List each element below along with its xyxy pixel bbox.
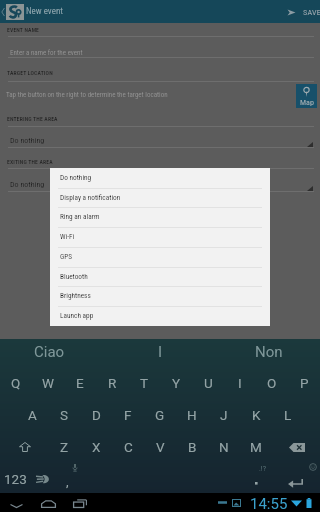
staticText: Do nothing [10,180,45,189]
staticText: E [76,375,84,391]
staticText: G [155,407,165,423]
button[interactable]: Map [296,84,317,108]
staticText: H [187,407,197,423]
button[interactable]: Recent apps [67,493,93,512]
button[interactable]: 123 [0,461,30,493]
button[interactable]: O [256,367,288,399]
button[interactable]: H [176,399,208,431]
staticText: Q [11,375,21,391]
button[interactable]: P [288,367,320,399]
staticText: Tap the button on the right to determine… [6,91,168,99]
staticText: W [42,375,54,391]
button[interactable]: Non [218,339,320,365]
button[interactable]: D [80,399,112,431]
button[interactable] [50,247,270,267]
button[interactable]: S [48,399,80,431]
button[interactable] [50,188,270,208]
button[interactable]: G [144,399,176,431]
staticText: B [188,439,197,455]
button[interactable]: Y [160,367,192,399]
button[interactable]: A [16,399,48,431]
button[interactable]: Q [0,367,32,399]
button[interactable]: B [176,431,208,463]
button[interactable]: Navigate up [0,0,25,23]
staticText: Bluetooth [60,272,88,281]
staticText: Launch app [60,311,94,320]
button[interactable]: E [64,367,96,399]
button[interactable]: Change keyboard [30,461,56,493]
staticText: N [219,439,229,455]
button[interactable]: , [56,461,78,493]
button[interactable]: N [208,431,240,463]
button[interactable]: Enter [282,461,320,493]
button[interactable] [50,267,270,287]
button[interactable] [50,227,270,247]
button[interactable]: F [112,399,144,431]
button[interactable]: U [192,367,224,399]
staticText: X [92,439,101,455]
staticText: K [252,407,261,423]
button[interactable]: V [144,431,176,463]
button[interactable]: R [96,367,128,399]
staticText: J [220,407,228,423]
staticText: New event [26,6,63,17]
staticText: T [140,375,149,391]
button[interactable]: I [224,367,256,399]
button[interactable]: C [112,431,144,463]
button[interactable] [50,207,270,227]
staticText: EXITING THE AREA [7,159,53,166]
staticText: U [204,375,213,391]
button[interactable]: L [272,399,304,431]
button[interactable] [50,306,270,326]
button[interactable]: Save [283,0,320,23]
staticText: C [124,439,133,455]
button[interactable]: W [32,367,64,399]
staticText: 14:55 [250,495,288,512]
staticText: 123 [4,471,27,487]
staticText: L [284,407,292,423]
staticText: Enter a name for the event [10,49,83,57]
staticText: ENTERING THE AREA [7,116,58,123]
staticText: EVENT NAME [7,27,40,34]
staticText: S [60,407,69,423]
staticText: Y [172,375,181,391]
button[interactable]: X [80,431,112,463]
button[interactable]: Ciao [0,339,98,365]
staticText: R [108,375,117,391]
staticText: TARGET LOCATION [7,70,53,77]
staticText: V [156,439,165,455]
button[interactable]: Back [3,493,29,512]
staticText: Ring an alarm [60,212,100,221]
button[interactable]: .!? [244,461,282,493]
button[interactable]: M [240,431,272,463]
button[interactable] [50,168,270,188]
staticText: GPS [60,252,73,261]
staticText: Map [300,98,314,107]
staticText: D [92,407,101,423]
button[interactable]: J [208,399,240,431]
staticText: Ciao [34,343,65,361]
staticText: SAVE [303,9,320,17]
button[interactable] [50,286,270,306]
button[interactable]: Backspace [272,431,320,463]
button[interactable]: K [240,399,272,431]
button[interactable]: Z [48,431,80,463]
staticText: A [28,407,37,423]
staticText: .!? [259,465,266,473]
staticText: F [124,407,132,423]
staticText: M [250,439,262,455]
button[interactable]: Home [35,493,61,512]
staticText: Display a notification [60,193,121,202]
staticText: Z [60,439,69,455]
staticText: Brightness [60,291,91,300]
button[interactable] [0,129,320,147]
button[interactable]: I [104,339,216,365]
staticText: Do nothing [10,136,45,145]
staticText: Non [255,343,283,361]
button[interactable] [0,173,320,191]
button[interactable]: T [128,367,160,399]
button[interactable]: Shift [0,431,48,463]
staticText: Do nothing [60,173,92,182]
staticText: Wi-Fi [60,232,75,241]
